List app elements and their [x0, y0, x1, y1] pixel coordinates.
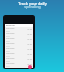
button[interactable]: Add expense — [28, 65, 32, 69]
button[interactable]: Groceries — [6, 27, 32, 32]
staticText: Groceries — [6, 42, 15, 45]
staticText: Groceries — [6, 37, 15, 40]
button[interactable]: Groceries — [6, 32, 32, 37]
staticText: 12.50 — [27, 28, 32, 31]
staticText: 12.50 — [27, 63, 32, 66]
staticText: Groceries — [6, 32, 15, 35]
staticText: Food — [6, 65, 10, 67]
button[interactable]: Groceries — [6, 62, 32, 67]
staticText: Food — [6, 35, 10, 37]
button[interactable]: Groceries — [6, 47, 32, 52]
button[interactable]: Groceries — [6, 57, 32, 62]
staticText: Food — [6, 55, 10, 57]
button[interactable]: Groceries — [6, 67, 32, 68]
button[interactable]: Groceries — [6, 52, 32, 57]
button[interactable]: Expenses — [5, 24, 33, 27]
staticText: Track your daily — [18, 1, 47, 6]
staticText: Groceries — [6, 52, 15, 55]
staticText: Food — [6, 40, 10, 42]
button[interactable]: Groceries — [6, 42, 32, 47]
staticText: Groceries — [6, 57, 15, 60]
staticText: spending — [24, 4, 41, 9]
staticText: Food — [6, 30, 10, 32]
button[interactable]: Groceries — [6, 37, 32, 42]
staticText: Food — [6, 50, 10, 52]
staticText: 12.50 — [27, 53, 32, 56]
staticText: Groceries — [6, 47, 15, 50]
staticText: 12.50 — [27, 33, 32, 36]
staticText: 12.50 — [27, 38, 32, 41]
staticText: 12.50 — [27, 67, 32, 68]
staticText: Expenses — [6, 24, 15, 27]
staticText: Groceries — [6, 62, 15, 65]
staticText: Groceries — [6, 27, 15, 30]
staticText: Food — [6, 45, 10, 47]
staticText: 12.50 — [27, 43, 32, 46]
staticText: Food — [6, 60, 10, 62]
staticText: 12.50 — [27, 58, 32, 61]
staticText: 12.50 — [27, 48, 32, 51]
